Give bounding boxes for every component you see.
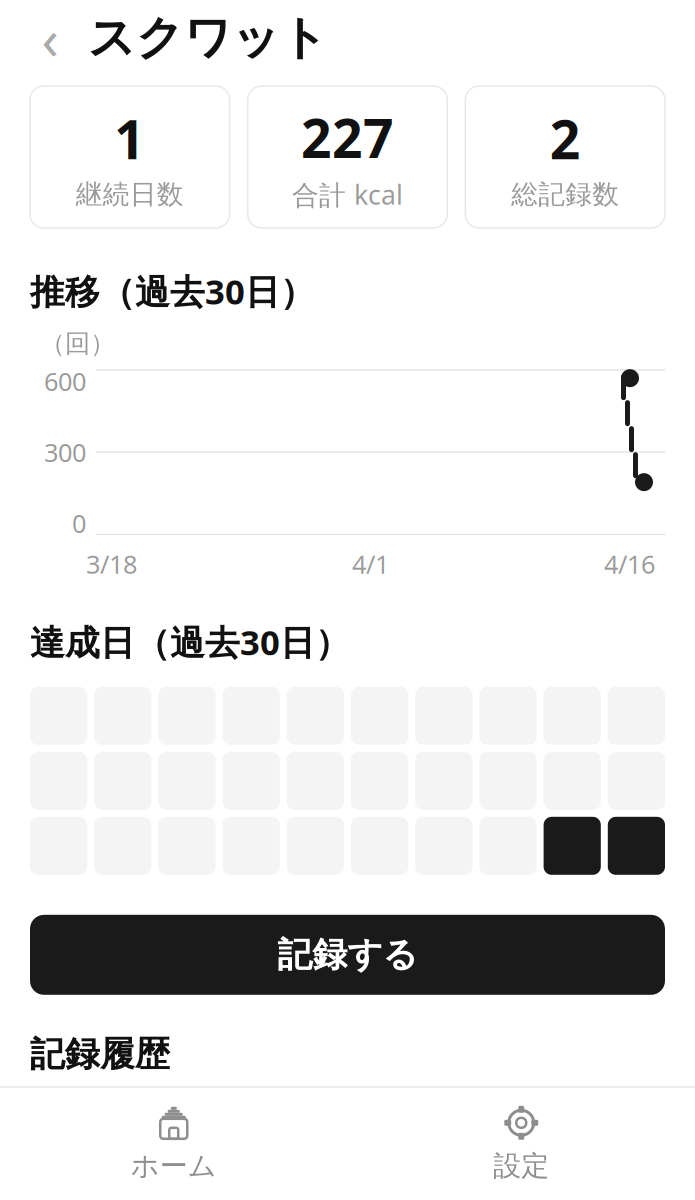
staticText: 300 xyxy=(44,435,86,469)
staticText: 記録する xyxy=(277,933,417,976)
staticText: 227 xyxy=(301,102,394,173)
staticText: 0 xyxy=(72,506,86,540)
staticText: スクワット xyxy=(88,9,328,67)
staticText: 設定 xyxy=(493,1149,549,1183)
staticText: 継続日数 xyxy=(76,178,184,211)
staticText: 4/16 xyxy=(604,547,655,581)
staticText: 2 xyxy=(550,103,581,174)
staticText: 4/1 xyxy=(352,547,389,581)
button[interactable]: Back xyxy=(26,10,74,66)
button[interactable]: 設定 xyxy=(347,1088,695,1200)
staticText: ホーム xyxy=(131,1149,217,1183)
staticText: 合計 kcal xyxy=(292,177,403,212)
staticText: 推移（過去30日） xyxy=(30,268,315,314)
staticText: 総記録数 xyxy=(511,178,619,211)
staticText: 1 xyxy=(114,103,145,174)
staticText: 記録履歴 xyxy=(30,1033,170,1075)
staticText: 達成日（過去30日） xyxy=(30,619,350,665)
staticText: （回） xyxy=(40,328,115,359)
button[interactable]: ホーム xyxy=(0,1088,347,1200)
staticText: 600 xyxy=(44,364,86,398)
button[interactable]: 記録する xyxy=(30,915,665,995)
staticText: 3/18 xyxy=(86,547,137,581)
staticText: ‹ xyxy=(41,1,58,75)
